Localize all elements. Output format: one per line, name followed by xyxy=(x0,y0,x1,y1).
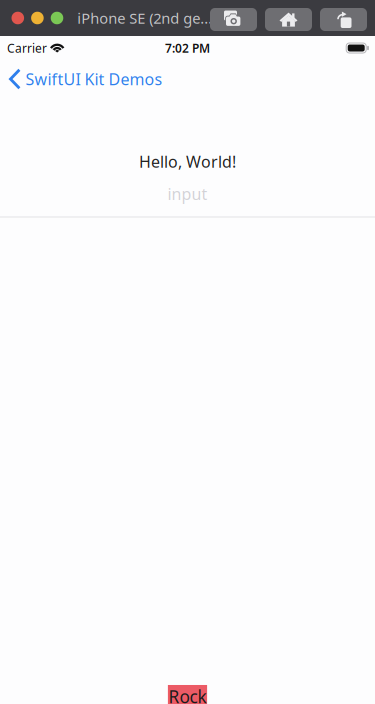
staticText: Hello, World! xyxy=(139,151,236,172)
button[interactable]: SwiftUI Kit Demos xyxy=(0,60,173,98)
button[interactable]: Zoom window xyxy=(51,12,63,24)
staticText: SwiftUI Kit Demos xyxy=(26,68,163,90)
staticText: iPhone SE (2nd ge... xyxy=(77,8,212,28)
staticText: 7:02 PM xyxy=(165,40,210,56)
staticText: Rock xyxy=(168,685,206,704)
button[interactable]: Screenshot xyxy=(210,8,257,31)
button[interactable]: Rotate xyxy=(320,8,367,31)
staticText: input xyxy=(167,183,207,204)
button[interactable]: Close window xyxy=(11,12,24,24)
staticText: Carrier xyxy=(7,40,47,56)
button[interactable]: Minimize window xyxy=(31,12,44,24)
button[interactable]: Home xyxy=(265,8,312,31)
